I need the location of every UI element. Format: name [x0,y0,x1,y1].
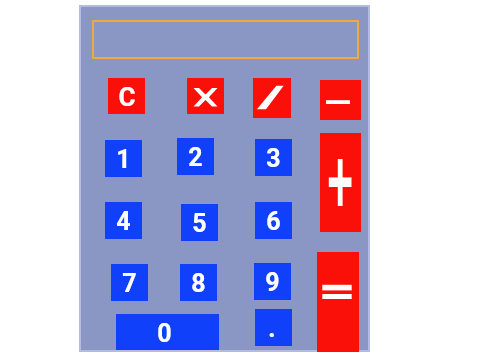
button[interactable]: 3 [255,139,292,176]
staticText: 2 [188,143,203,172]
button[interactable]: 9 [254,263,291,300]
staticText: 5 [192,209,207,238]
staticText: 1 [116,145,131,174]
staticText: 0 [157,319,172,348]
button[interactable]: 1 [105,140,142,177]
staticText: 4 [116,207,131,236]
button[interactable]: 0 [116,314,219,350]
button[interactable]: 7 [111,264,148,301]
button[interactable]: Equals [317,252,359,352]
staticText: 6 [266,207,281,236]
button[interactable]: C [108,78,145,114]
button[interactable]: 4 [105,202,142,239]
staticText: 8 [191,269,206,298]
staticText: 9 [265,268,280,297]
button[interactable]: 6 [255,202,292,239]
staticText: 7 [122,269,137,298]
staticText: . [268,314,276,343]
staticText: C [118,82,136,112]
button[interactable]: 5 [181,204,218,241]
button[interactable]: Divide [253,78,291,118]
staticText: 3 [266,144,281,173]
button[interactable]: Minus [320,80,361,120]
button[interactable]: 2 [177,138,214,175]
button[interactable]: 8 [180,264,217,301]
button[interactable]: Plus [320,133,361,232]
button[interactable]: Multiply [187,78,224,114]
button[interactable]: . [255,309,292,346]
button[interactable] [92,20,359,59]
